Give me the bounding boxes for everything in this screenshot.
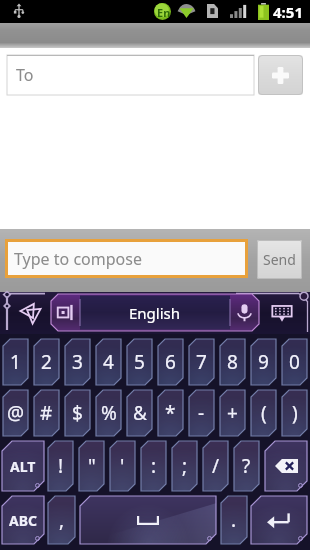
button[interactable]: ! (48, 441, 73, 491)
staticText: " (88, 453, 96, 479)
button[interactable]: $ (65, 390, 90, 436)
button[interactable]: 1 (3, 339, 28, 385)
button[interactable]: ' (110, 441, 135, 491)
button[interactable]: 6 (158, 339, 183, 385)
staticText: # (40, 400, 53, 426)
button[interactable]: @ (3, 390, 28, 436)
staticText: - (198, 400, 205, 426)
button[interactable]: 2 (34, 339, 59, 385)
button[interactable]: 0 (282, 339, 307, 385)
staticText: ( (261, 400, 267, 426)
staticText: ; (182, 453, 188, 479)
staticText: 2 (41, 349, 52, 375)
staticText: % (101, 400, 117, 426)
staticText: ? (242, 453, 251, 479)
button[interactable]: Sound off (14, 296, 46, 330)
button[interactable]: ) (282, 390, 307, 436)
staticText: 8 (227, 349, 238, 375)
staticText: , (59, 507, 65, 533)
staticText: En (157, 5, 171, 20)
staticText: + (227, 400, 238, 426)
button[interactable]: Send (257, 240, 302, 279)
staticText: 1 (10, 349, 21, 375)
staticText: Send (263, 250, 296, 269)
button[interactable]: # (34, 390, 59, 436)
button[interactable]: % (96, 390, 121, 436)
button[interactable]: , (48, 496, 75, 544)
staticText: . (231, 507, 237, 533)
staticText: ) (292, 400, 298, 426)
button[interactable]: Enter (251, 496, 307, 544)
staticText: @ (7, 400, 25, 426)
button[interactable]: & (127, 390, 152, 436)
staticText: 9 (258, 349, 269, 375)
staticText: To (16, 64, 34, 86)
button[interactable]: - (189, 390, 214, 436)
button[interactable]: ? (234, 441, 259, 491)
button[interactable]: * (158, 390, 183, 436)
button[interactable]: Add recipient (258, 55, 303, 95)
button[interactable]: Delete (265, 441, 307, 491)
staticText: * (165, 400, 176, 426)
staticText: 0 (289, 349, 300, 375)
staticText: 4:51 (273, 2, 303, 22)
staticText: English (129, 303, 181, 323)
button[interactable]: Space (80, 496, 216, 544)
staticText: Type to compose (14, 248, 142, 270)
button[interactable]: ( (251, 390, 276, 436)
staticText: ALT (10, 457, 36, 476)
staticText: 4 (103, 349, 114, 375)
button[interactable]: : (141, 441, 166, 491)
button[interactable]: . (221, 496, 247, 544)
staticText: / (212, 453, 220, 479)
button[interactable]: 4 (96, 339, 121, 385)
staticText: 3 (72, 349, 83, 375)
button[interactable]: Voice input (229, 294, 259, 331)
button[interactable]: ; (172, 441, 197, 491)
button[interactable]: 9 (251, 339, 276, 385)
button[interactable]: To (7, 55, 254, 95)
staticText: : (151, 453, 157, 479)
staticText: 5 (134, 349, 145, 375)
button[interactable]: 3 (65, 339, 90, 385)
staticText: ABC (9, 511, 37, 530)
staticText: ! (58, 453, 64, 479)
button[interactable]: " (79, 441, 104, 491)
button[interactable]: 5 (127, 339, 152, 385)
button[interactable]: ABC (2, 496, 44, 544)
button[interactable]: Type to compose (5, 239, 248, 278)
staticText: 7 (196, 349, 207, 375)
button[interactable]: 7 (189, 339, 214, 385)
button[interactable]: + (220, 390, 245, 436)
staticText: & (133, 400, 147, 426)
button[interactable]: English (81, 294, 229, 331)
button[interactable]: / (203, 441, 228, 491)
button[interactable]: Input method (51, 294, 81, 331)
button[interactable]: 8 (220, 339, 245, 385)
button[interactable]: ALT (2, 441, 44, 491)
staticText: 6 (165, 349, 176, 375)
button[interactable]: Keyboard settings (265, 296, 299, 330)
staticText: $ (72, 400, 83, 426)
staticText: ' (120, 453, 125, 479)
